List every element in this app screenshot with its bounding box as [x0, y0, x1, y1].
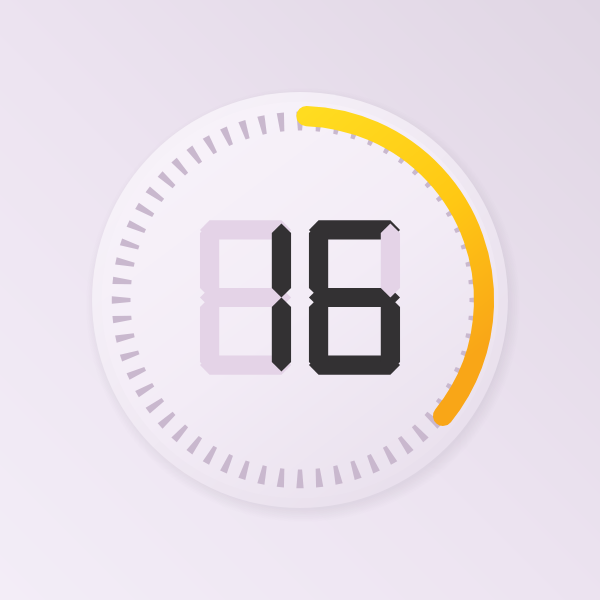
button[interactable]: Timer dial, 16 minutes remaining — [0, 0, 600, 600]
